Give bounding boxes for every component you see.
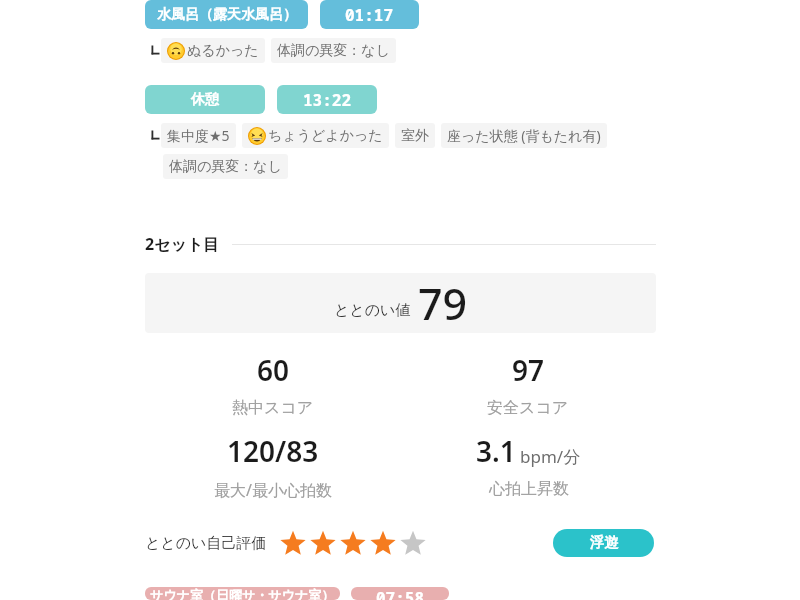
staticText: 座った状態 (背もたれ有): [447, 126, 601, 145]
staticText: 安全スコア: [487, 398, 569, 418]
staticText: 3.1: [476, 432, 516, 470]
button[interactable]: ぬるかった: [167, 38, 259, 63]
staticText: 120/83: [227, 432, 319, 470]
staticText: 心拍上昇数: [489, 479, 569, 499]
staticText: ちょうどよかった: [268, 127, 383, 145]
button[interactable]: 01:17: [320, 0, 419, 29]
button[interactable]: 集中度★5: [167, 123, 230, 148]
button[interactable]: ととのい自己評価 4 / 5: [278, 528, 428, 558]
staticText: 07:58: [376, 587, 425, 600]
staticText: bpm/分: [520, 445, 581, 468]
staticText: 熱中スコア: [232, 398, 314, 418]
staticText: 休憩: [191, 91, 219, 109]
button[interactable]: 07:58: [351, 587, 449, 600]
button[interactable]: 室外: [401, 123, 429, 148]
staticText: ととのい値: [334, 301, 411, 320]
staticText: サウナ室（日曜サ・サウナ室）: [150, 587, 335, 600]
staticText: 浮遊: [590, 534, 618, 552]
staticText: 13:22: [303, 89, 352, 111]
staticText: ぬるかった: [187, 42, 259, 60]
staticText: 体調の異変：なし: [169, 158, 282, 176]
staticText: 水風呂（露天水風呂）: [157, 6, 297, 24]
staticText: 集中度★5: [167, 126, 230, 145]
staticText: 97: [512, 351, 545, 389]
staticText: ととのい自己評価: [145, 534, 267, 553]
staticText: 79: [418, 274, 468, 333]
button[interactable]: 体調の異変：なし: [277, 38, 390, 63]
staticText: 01:17: [345, 4, 394, 26]
staticText: 最大/最小心拍数: [214, 479, 332, 501]
staticText: 2セット目: [145, 233, 220, 255]
button[interactable]: 座った状態 (背もたれ有): [447, 123, 601, 148]
staticText: 室外: [401, 127, 429, 145]
button[interactable]: 13:22: [277, 85, 377, 114]
button[interactable]: 体調の異変：なし: [169, 154, 282, 179]
button[interactable]: ちょうどよかった: [248, 123, 383, 148]
button[interactable]: 浮遊: [553, 529, 654, 557]
button[interactable]: ととのい値: [145, 273, 656, 333]
button[interactable]: 休憩: [145, 85, 265, 114]
button[interactable]: サウナ室（日曜サ・サウナ室）: [145, 587, 340, 600]
button[interactable]: 水風呂（露天水風呂）: [145, 0, 308, 29]
staticText: 60: [257, 351, 290, 389]
staticText: 体調の異変：なし: [277, 42, 390, 60]
